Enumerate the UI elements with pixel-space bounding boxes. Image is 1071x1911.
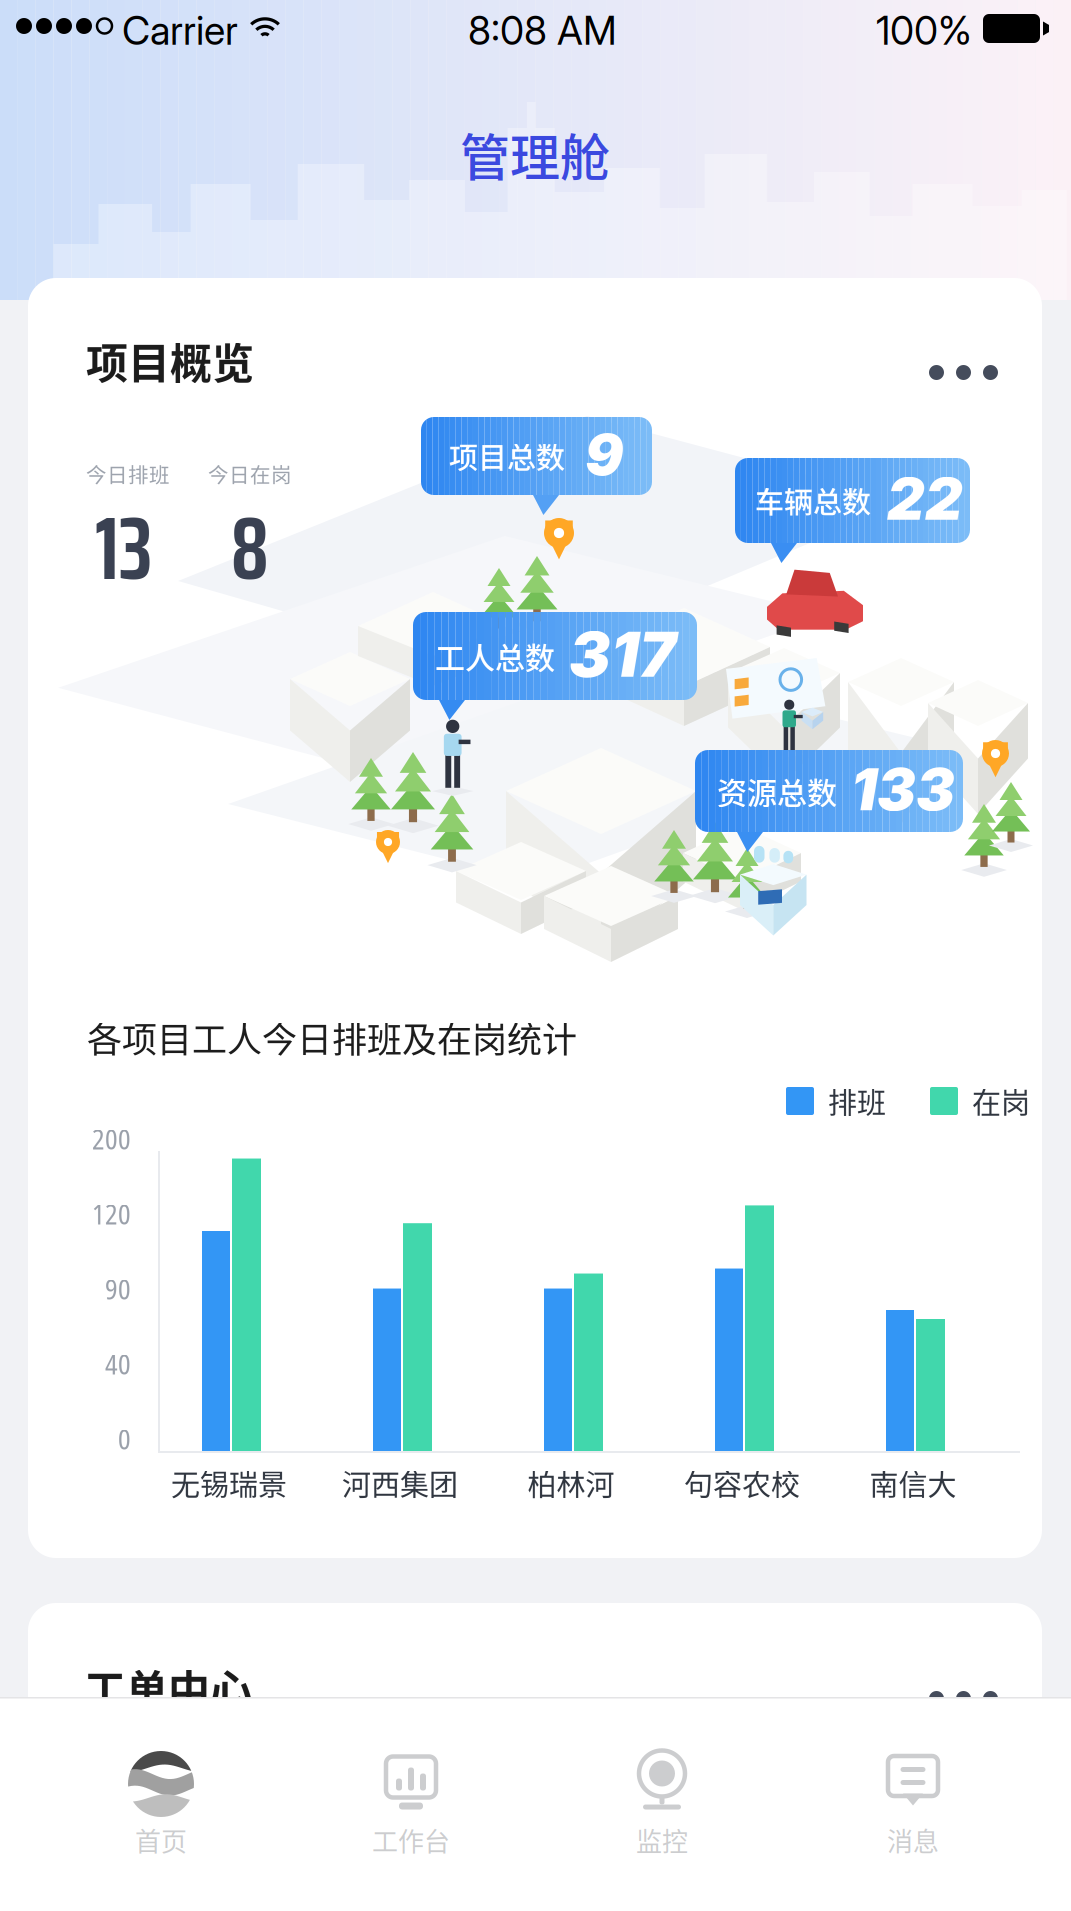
staticText: 120 (92, 1196, 131, 1232)
staticText: 河西集团 (342, 1462, 458, 1504)
staticText: 40 (105, 1346, 131, 1382)
staticText: 0 (118, 1421, 131, 1457)
staticText: 工作台 (372, 1821, 450, 1859)
staticText: 无锡瑞景 (171, 1462, 287, 1504)
staticText: 项目概览 (86, 330, 254, 391)
staticText: 各项目工人今日排班及在岗统计 (87, 1012, 577, 1063)
staticText: 排班 (828, 1080, 886, 1122)
staticText: 200 (92, 1121, 131, 1157)
button[interactable]: 消息 (813, 1699, 1013, 1911)
button[interactable]: 监控 (562, 1699, 762, 1911)
staticText: 今日排班 (86, 459, 170, 489)
staticText: 100% (876, 7, 972, 54)
button[interactable]: 工作台 (311, 1699, 511, 1911)
staticText: 监控 (636, 1821, 688, 1859)
staticText: 工人总数 (435, 634, 555, 678)
staticText: 133 (851, 754, 955, 824)
staticText: 消息 (887, 1821, 939, 1859)
staticText: 资源总数 (717, 769, 837, 813)
staticText: 首页 (135, 1821, 187, 1859)
button[interactable]: More (911, 347, 1016, 398)
staticText: 22 (887, 464, 963, 534)
staticText: 工单中心 (84, 1657, 252, 1718)
staticText: 8:08 AM (468, 7, 617, 54)
button[interactable]: 首页 (61, 1699, 261, 1911)
staticText: 项目总数 (449, 435, 565, 477)
button[interactable]: More (911, 1673, 1016, 1724)
staticText: 90 (105, 1271, 131, 1307)
staticText: 柏林河 (527, 1462, 614, 1504)
staticText: 8 (231, 479, 269, 617)
staticText: 句容农校 (684, 1462, 800, 1504)
staticText: Carrier (122, 7, 238, 54)
staticText: 13 (95, 479, 152, 617)
staticText: 今日在岗 (208, 459, 292, 489)
staticText: 317 (569, 617, 676, 692)
staticText: 管理舱 (460, 118, 610, 190)
staticText: 车辆总数 (755, 479, 871, 521)
staticText: 9 (585, 420, 623, 489)
staticText: 在岗 (972, 1080, 1030, 1122)
staticText: 南信大 (869, 1462, 956, 1504)
